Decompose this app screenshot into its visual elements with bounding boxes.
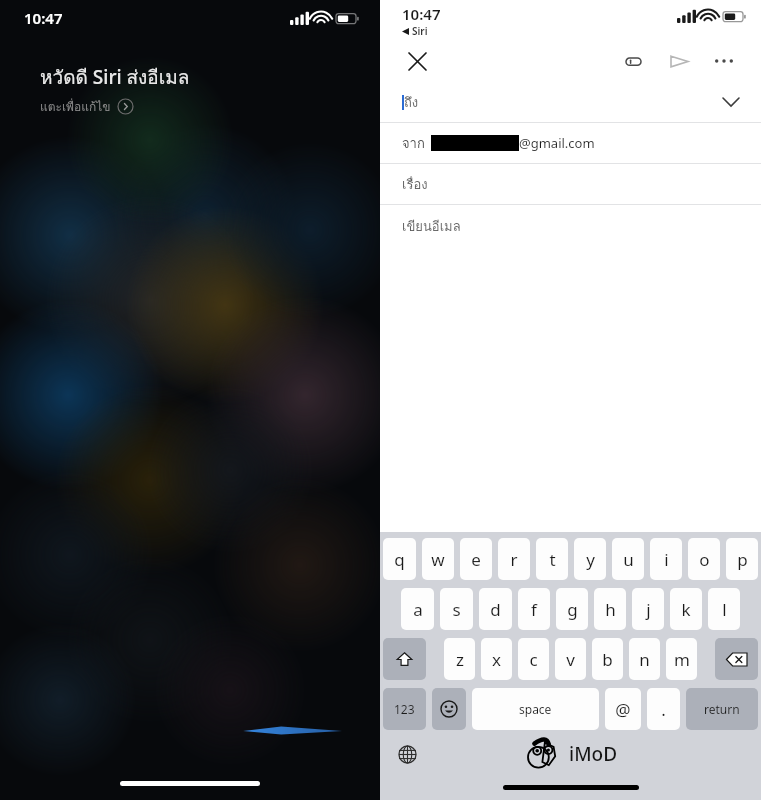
button[interactable]: p [726,538,758,580]
staticText: w [431,548,445,571]
button[interactable]: f [518,588,550,630]
button[interactable]: k [670,588,702,630]
button[interactable]: q [383,538,416,580]
staticText: z [456,648,464,671]
staticText: f [531,598,537,621]
button[interactable]: space [472,688,599,730]
button[interactable]: m [666,638,697,680]
staticText: y [586,548,595,571]
staticText: เขียนอีเมล [402,216,461,237]
button[interactable]: . [647,688,680,730]
button[interactable]: return [686,688,758,730]
staticText: x [492,648,501,671]
staticText: 10:47 [402,4,441,24]
staticText: h [605,598,616,621]
button[interactable]: j [632,588,664,630]
button[interactable]: ถึง [380,82,761,122]
button[interactable]: d [479,588,512,630]
staticText: t [549,548,556,571]
staticText: Siri [412,24,428,38]
staticText: space [519,701,552,717]
staticText: m [674,648,690,671]
staticText: n [639,648,650,671]
staticText: . [661,698,666,721]
button[interactable]: จาก [380,123,761,163]
button[interactable]: i [650,538,682,580]
button[interactable]: Close [402,46,432,76]
button[interactable]: แตะเพื่อแก้ไข [40,97,133,116]
staticText: u [623,548,634,571]
button[interactable]: b [592,638,623,680]
staticText: @gmail.com [519,134,595,152]
button[interactable]: e [460,538,492,580]
button[interactable]: เรื่อง [380,164,761,204]
staticText: แตะเพื่อแก้ไข [40,97,111,116]
button[interactable]: u [612,538,644,580]
staticText: 123 [394,701,415,717]
button[interactable]: a [401,588,434,630]
staticText: 10:47 [24,8,63,28]
staticText: b [602,648,613,671]
button[interactable]: Backspace [715,638,758,680]
button[interactable]: h [594,588,626,630]
staticText: q [394,548,405,571]
staticText: l [722,598,727,621]
button[interactable]: n [629,638,660,680]
button[interactable]: Shift [383,638,426,680]
button[interactable]: x [481,638,512,680]
staticText: a [413,598,423,621]
button[interactable]: o [688,538,720,580]
staticText: iMoD [569,741,618,767]
button[interactable]: y [574,538,606,580]
staticText: @ [615,698,631,721]
staticText: g [567,598,578,621]
button[interactable]: @ [605,688,641,730]
staticText: o [699,548,710,571]
button[interactable]: z [444,638,475,680]
button[interactable]: เขียนอีเมล [380,205,761,247]
staticText: i [664,548,669,571]
button[interactable]: w [422,538,454,580]
staticText: p [737,548,748,571]
staticText: จาก [402,133,425,154]
button[interactable]: Send [663,45,695,77]
staticText: k [681,598,691,621]
staticText: j [646,598,651,621]
staticText: c [529,648,538,671]
button[interactable]: 123 [383,688,426,730]
staticText: หวัดดี Siri ส่งอีเมล [40,62,190,92]
button[interactable]: Attach file [617,45,649,77]
button[interactable]: v [555,638,586,680]
button[interactable]: More options [709,46,739,76]
staticText: เรื่อง [402,174,428,195]
button[interactable]: Change keyboard [392,739,422,769]
staticText: return [704,701,740,717]
staticText: s [452,598,461,621]
button[interactable]: g [556,588,588,630]
button[interactable]: r [498,538,530,580]
staticText: d [490,598,501,621]
staticText: v [566,648,575,671]
staticText: ถึง [404,92,419,113]
button[interactable]: c [518,638,549,680]
button[interactable]: s [440,588,473,630]
button[interactable]: t [536,538,568,580]
button[interactable]: l [708,588,740,630]
staticText: r [510,548,518,571]
button[interactable]: Emoji [432,688,466,730]
staticText: e [471,548,481,571]
